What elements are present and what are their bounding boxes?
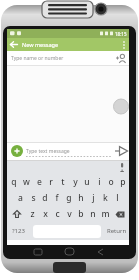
staticText: z xyxy=(30,208,35,220)
staticText: l xyxy=(116,192,119,204)
button[interactable] xyxy=(113,51,129,66)
button[interactable]: f xyxy=(51,190,63,206)
button[interactable]: h xyxy=(75,190,87,206)
button[interactable]: v xyxy=(63,206,75,222)
button[interactable]: a xyxy=(14,190,27,206)
button[interactable]: y xyxy=(69,174,81,190)
staticText: ?123 xyxy=(12,227,25,235)
staticText: q xyxy=(11,176,17,188)
staticText: i xyxy=(98,176,101,188)
button[interactable]: x xyxy=(39,206,51,222)
staticText: s xyxy=(31,192,36,204)
staticText: m xyxy=(101,208,110,220)
button[interactable] xyxy=(11,145,23,157)
staticText: w xyxy=(23,176,30,188)
button[interactable]: r xyxy=(45,174,57,190)
button[interactable]: d xyxy=(39,190,51,206)
button[interactable]: p xyxy=(117,174,129,190)
staticText: d xyxy=(42,192,48,204)
staticText: k xyxy=(103,192,108,204)
staticText: a xyxy=(18,192,23,204)
button[interactable]: ?123 xyxy=(7,222,29,240)
button[interactable]: c xyxy=(51,206,63,222)
staticText: y xyxy=(73,176,78,188)
staticText: p xyxy=(120,176,126,188)
staticText: r xyxy=(49,176,53,188)
button[interactable]: Return xyxy=(105,222,129,240)
staticText: x xyxy=(43,208,48,220)
button[interactable]: q xyxy=(7,174,20,190)
button[interactable]: m xyxy=(99,206,111,222)
staticText: c xyxy=(55,208,60,220)
button[interactable]: n xyxy=(87,206,99,222)
staticText: j xyxy=(92,192,95,204)
staticText: New message xyxy=(22,41,59,48)
staticText: Type text message xyxy=(26,148,70,155)
button[interactable]: g xyxy=(63,190,75,206)
button[interactable]: w xyxy=(20,174,33,190)
button[interactable]: e xyxy=(33,174,45,190)
button[interactable]: o xyxy=(105,174,117,190)
staticText: Type name or number xyxy=(11,55,64,62)
staticText: v xyxy=(67,208,72,220)
staticText: 18:15 xyxy=(115,31,127,37)
staticText: e xyxy=(37,176,42,188)
button[interactable]: s xyxy=(27,190,39,206)
button[interactable] xyxy=(7,206,26,222)
button[interactable] xyxy=(7,38,21,51)
button[interactable]: j xyxy=(87,190,99,206)
button[interactable]: Type name or number xyxy=(7,51,129,66)
staticText: n xyxy=(90,208,96,220)
button[interactable] xyxy=(119,38,129,51)
staticText: h xyxy=(78,192,84,204)
button[interactable]: z xyxy=(26,206,39,222)
staticText: t xyxy=(61,176,65,188)
button[interactable] xyxy=(111,206,129,222)
button[interactable]: i xyxy=(93,174,105,190)
staticText: f xyxy=(55,192,59,204)
button[interactable]: b xyxy=(75,206,87,222)
button[interactable] xyxy=(113,142,129,160)
staticText: Return xyxy=(107,227,127,235)
staticText: o xyxy=(108,176,114,188)
button[interactable]: t xyxy=(57,174,69,190)
button[interactable]: Type text message xyxy=(25,142,113,160)
button[interactable]: l xyxy=(111,190,123,206)
staticText: g xyxy=(66,192,72,204)
staticText: b xyxy=(78,208,84,220)
button[interactable] xyxy=(115,160,129,174)
staticText: u xyxy=(84,176,90,188)
button[interactable]: k xyxy=(99,190,111,206)
button[interactable]: u xyxy=(81,174,93,190)
